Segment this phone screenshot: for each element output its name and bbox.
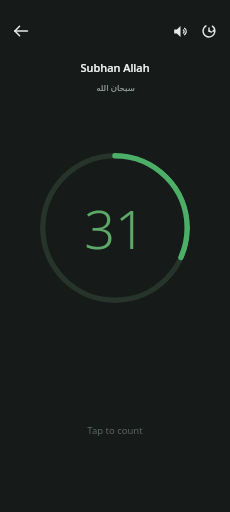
staticText: Subhan Allah (80, 60, 150, 75)
button[interactable]: Sound (167, 18, 193, 44)
button[interactable]: Back (8, 18, 34, 44)
staticText: 31 (84, 191, 146, 265)
button[interactable]: Back (0, 0, 230, 512)
staticText: سبحان الله (96, 82, 135, 94)
staticText: Tap to count (87, 424, 143, 437)
button[interactable]: History (196, 18, 222, 44)
button[interactable]: 31 (40, 153, 190, 303)
